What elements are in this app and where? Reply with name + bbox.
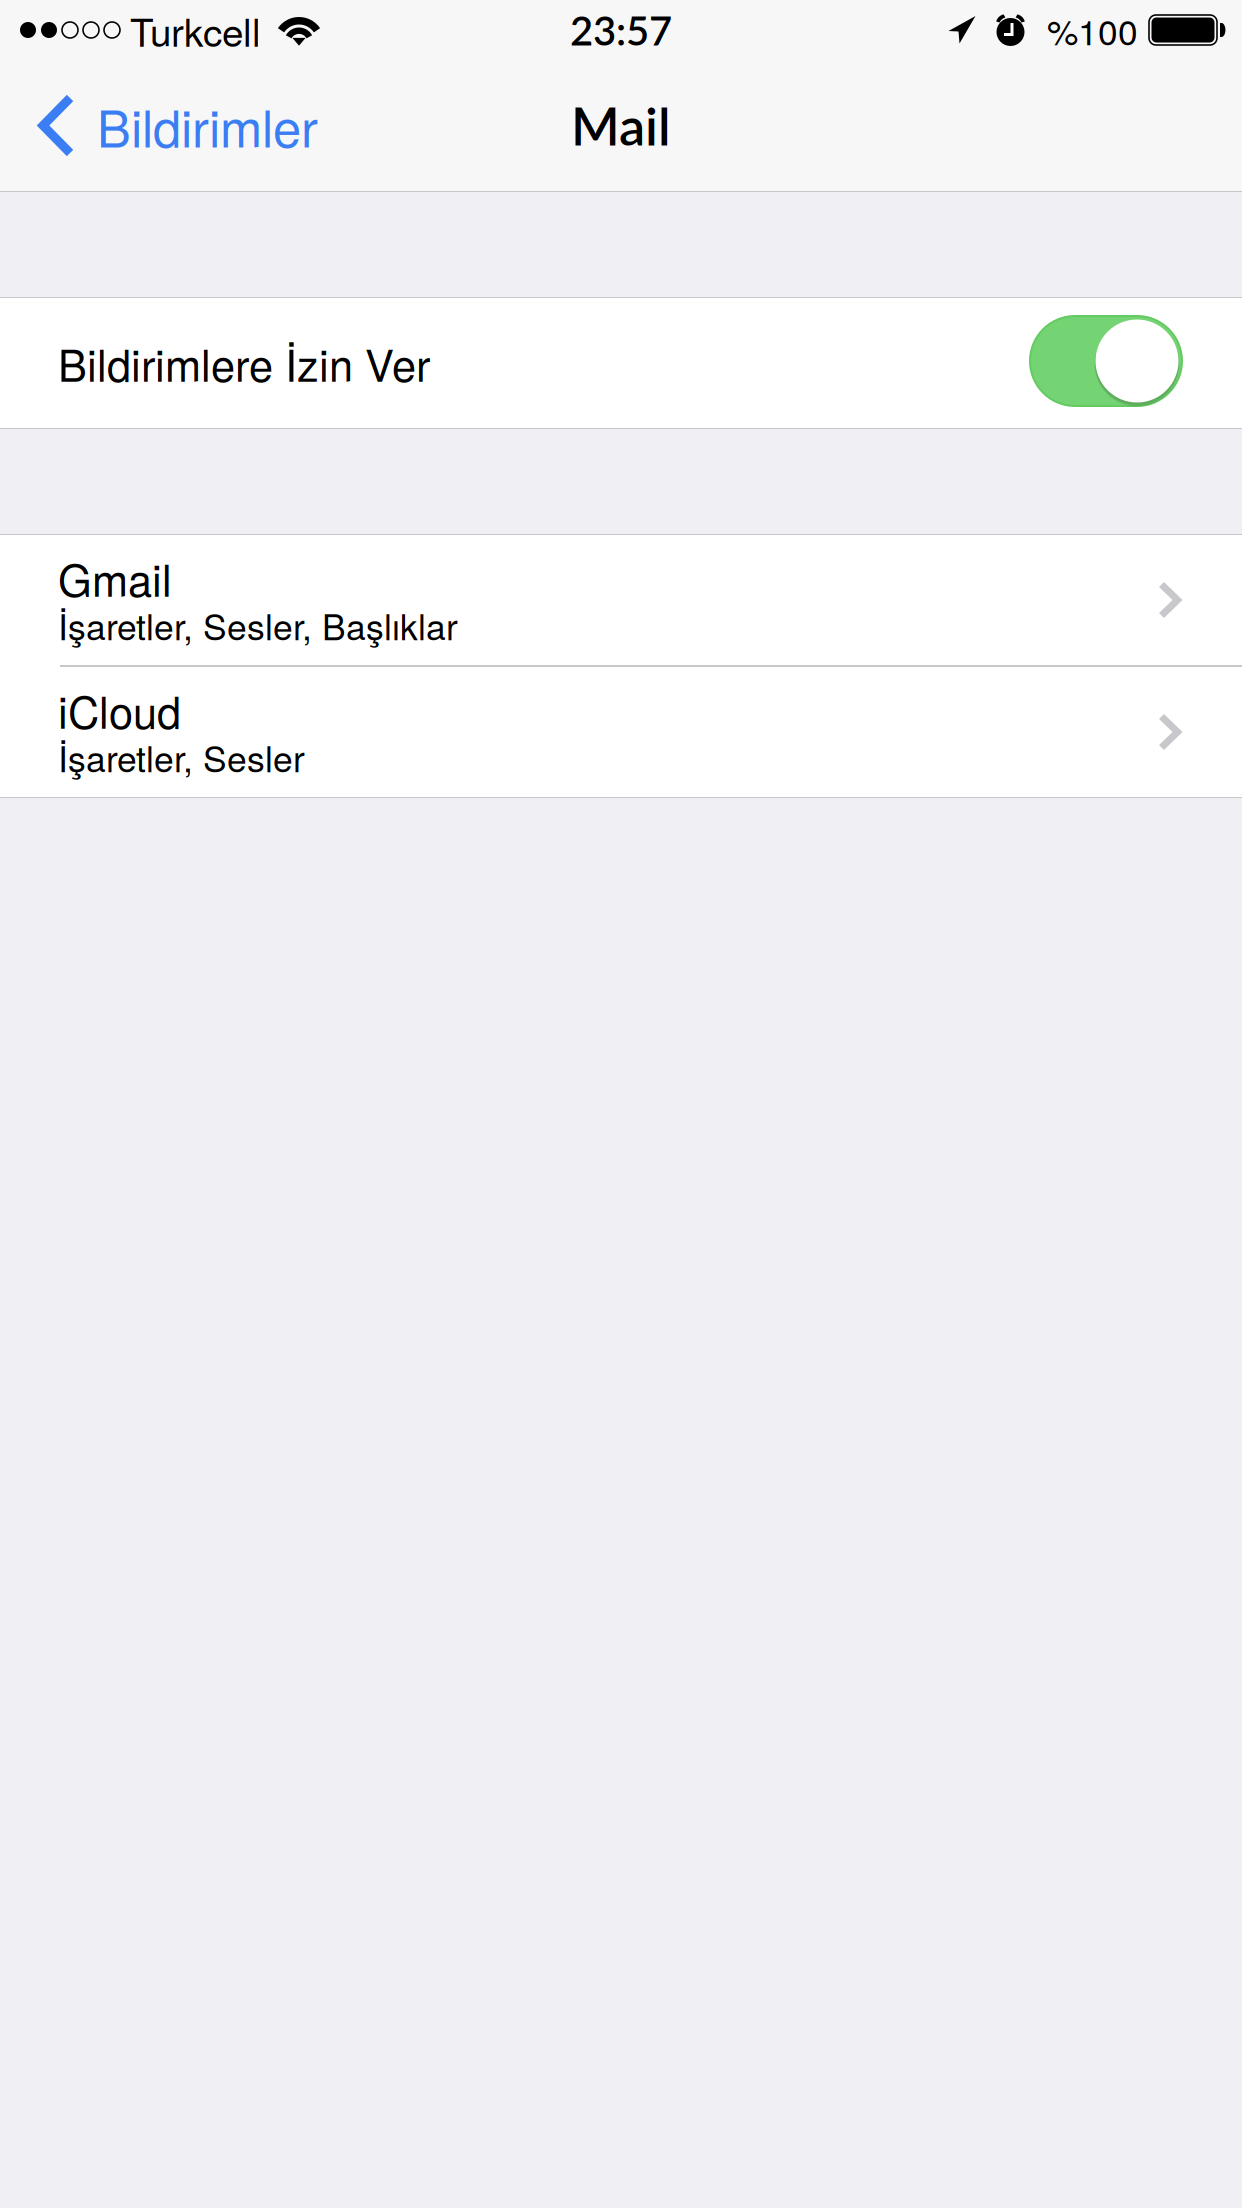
staticText: %100 xyxy=(1047,5,1138,55)
button[interactable]: Gmail xyxy=(0,535,1242,665)
staticText: Turkcell xyxy=(130,2,261,58)
staticText: 23:57 xyxy=(570,6,672,54)
staticText: İşaretler, Sesler, Başlıklar xyxy=(58,600,458,650)
staticText: İşaretler, Sesler xyxy=(58,732,305,782)
staticText: Bildirimler xyxy=(97,89,318,162)
staticText: Gmail xyxy=(58,547,172,609)
staticText: iCloud xyxy=(58,679,181,741)
button[interactable]: iCloud xyxy=(0,667,1242,797)
button[interactable]: Bildirimlere İzin Ver xyxy=(0,298,1242,428)
button[interactable]: Bildirimler xyxy=(0,60,344,191)
staticText: Mail xyxy=(571,94,671,157)
staticText: Bildirimlere İzin Ver xyxy=(58,332,430,394)
